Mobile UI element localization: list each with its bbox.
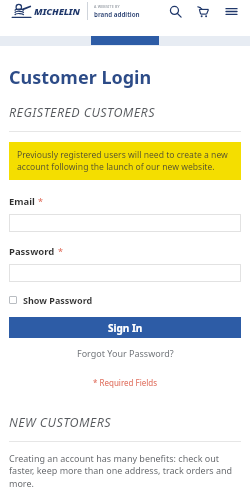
button[interactable]: Menu [220, 0, 242, 22]
staticText: MICHELIN [34, 5, 80, 18]
staticText: Customer Login [9, 65, 152, 90]
staticText: NEW CUSTOMERS [9, 414, 111, 431]
staticText: Show Password [23, 294, 93, 306]
staticText: * [38, 195, 43, 207]
staticText: Creating an account has many benefits: c… [9, 452, 241, 490]
staticText: Sign In [108, 321, 143, 335]
button[interactable]: Search [164, 0, 186, 22]
button[interactable] [9, 264, 241, 282]
button[interactable]: Show Password [9, 294, 93, 306]
button[interactable] [9, 214, 241, 232]
staticText: Previously registered users will need to… [17, 149, 233, 173]
staticText: Password [9, 245, 55, 258]
staticText: REGISTERED CUSTOMERS [9, 104, 155, 121]
staticText: * [58, 245, 63, 257]
staticText: Email [9, 195, 35, 208]
staticText: A WEBSITE BY [94, 4, 120, 9]
staticText: * Required Fields [93, 377, 158, 388]
button[interactable]: Cart [192, 0, 214, 22]
button[interactable]: Forgot Your Password? [77, 347, 174, 359]
staticText: brand addition [94, 10, 140, 18]
button[interactable]: Sign In [9, 317, 241, 338]
